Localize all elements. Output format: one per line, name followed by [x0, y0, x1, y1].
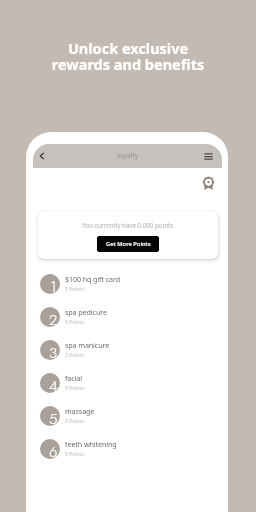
button[interactable]: 5: [26, 399, 228, 432]
staticText: spa manicure: [65, 340, 110, 350]
staticText: 4: [49, 375, 58, 395]
staticText: spa pedicure: [65, 307, 107, 317]
staticText: 5 Points: [65, 286, 84, 293]
staticText: 5 Points: [65, 352, 84, 359]
staticText: $100 hq gift card: [65, 274, 120, 284]
staticText: 5 Points: [65, 418, 84, 425]
staticText: teeth whitening: [65, 439, 117, 449]
button[interactable]: 6: [26, 432, 228, 465]
staticText: Get More Points: [106, 240, 151, 248]
button[interactable]: Rewards badge: [198, 173, 218, 193]
staticText: massage: [65, 406, 95, 416]
button[interactable]: Back: [33, 147, 51, 165]
staticText: 2: [49, 309, 58, 329]
staticText: 6: [49, 441, 58, 461]
button[interactable]: 3: [26, 333, 228, 366]
button[interactable]: Menu: [201, 149, 215, 163]
staticText: 5 Points: [65, 451, 84, 458]
button[interactable]: 4: [26, 366, 228, 399]
staticText: 5 Points: [65, 319, 84, 326]
staticText: loyalty: [117, 151, 139, 161]
button[interactable]: 1: [26, 267, 228, 300]
staticText: facial: [65, 373, 82, 383]
staticText: 3: [49, 342, 58, 362]
button[interactable]: Get More Points: [97, 236, 159, 252]
staticText: 1: [50, 276, 57, 296]
staticText: You currently have 0.000 points: [82, 221, 174, 229]
button[interactable]: 2: [26, 300, 228, 333]
staticText: 5 Points: [65, 385, 84, 392]
staticText: Unlock exclusive rewards and benefits: [0, 38, 256, 75]
staticText: 5: [49, 408, 58, 428]
